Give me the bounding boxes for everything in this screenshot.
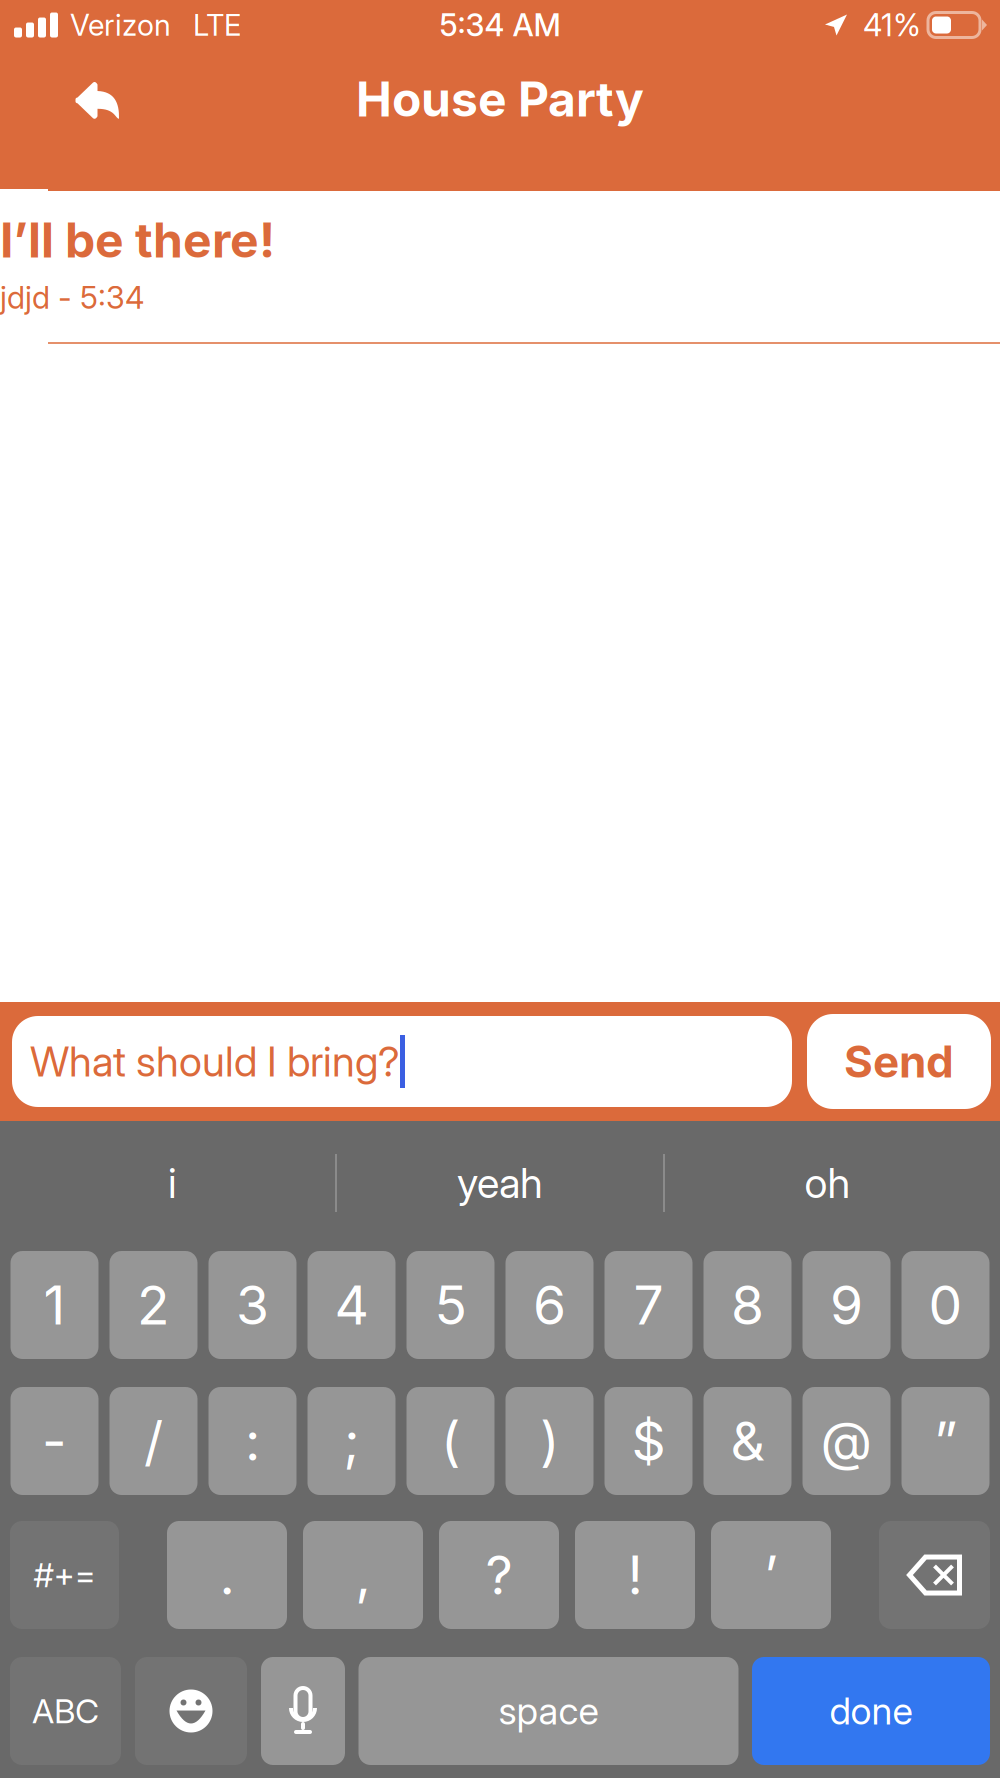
- button[interactable]: 8: [703, 1251, 791, 1359]
- staticText: 7: [633, 1273, 663, 1337]
- button[interactable]: .: [167, 1521, 287, 1629]
- button[interactable]: ”: [901, 1387, 989, 1495]
- staticText: ABC: [32, 1691, 99, 1731]
- button[interactable]: 3: [208, 1251, 296, 1359]
- staticText: oh: [804, 1158, 850, 1208]
- staticText: ’: [764, 1543, 778, 1607]
- button[interactable]: I’ll be there!: [0, 191, 1000, 344]
- staticText: ): [540, 1409, 559, 1473]
- button[interactable]: ;: [307, 1387, 395, 1495]
- staticText: -: [42, 1409, 67, 1473]
- button[interactable]: 9: [802, 1251, 890, 1359]
- staticText: 9: [830, 1273, 863, 1337]
- staticText: 1: [43, 1273, 65, 1337]
- staticText: &: [730, 1409, 764, 1473]
- staticText: 4: [334, 1273, 368, 1337]
- staticText: :: [245, 1409, 260, 1473]
- staticText: (: [441, 1409, 460, 1473]
- button[interactable]: ,: [303, 1521, 423, 1629]
- button[interactable]: Back: [0, 70, 160, 169]
- button[interactable]: yeah: [337, 1121, 663, 1245]
- button[interactable]: /: [109, 1387, 197, 1495]
- button[interactable]: @: [802, 1387, 890, 1495]
- staticText: 0: [928, 1273, 962, 1337]
- button[interactable]: 2: [109, 1251, 197, 1359]
- button[interactable]: #+=: [10, 1521, 119, 1629]
- button[interactable]: !: [575, 1521, 695, 1629]
- staticText: 41%: [863, 6, 921, 43]
- staticText: ?: [485, 1543, 512, 1607]
- button[interactable]: Dictation: [261, 1657, 345, 1765]
- staticText: ,: [355, 1543, 370, 1607]
- staticText: $: [631, 1409, 665, 1473]
- button[interactable]: ?: [439, 1521, 559, 1629]
- button[interactable]: Delete: [879, 1521, 990, 1629]
- button[interactable]: What should I bring?: [12, 1016, 792, 1107]
- staticText: i: [168, 1158, 177, 1208]
- staticText: ;: [343, 1409, 359, 1473]
- staticText: space: [498, 1688, 598, 1734]
- staticText: LTE: [193, 7, 241, 43]
- button[interactable]: -: [10, 1387, 98, 1495]
- staticText: .: [219, 1543, 234, 1607]
- staticText: @: [820, 1409, 872, 1473]
- button[interactable]: i: [10, 1121, 335, 1245]
- staticText: Send: [844, 1035, 954, 1088]
- staticText: 5:34 AM: [439, 6, 560, 43]
- staticText: I’ll be there!: [0, 211, 275, 269]
- button[interactable]: Send: [807, 1014, 991, 1109]
- button[interactable]: done: [752, 1657, 990, 1765]
- button[interactable]: oh: [665, 1121, 990, 1245]
- staticText: /: [144, 1409, 163, 1473]
- button[interactable]: ’: [711, 1521, 831, 1629]
- button[interactable]: 1: [10, 1251, 98, 1359]
- staticText: 2: [137, 1273, 170, 1337]
- button[interactable]: &: [703, 1387, 791, 1495]
- staticText: Verizon: [70, 7, 171, 43]
- button[interactable]: 6: [505, 1251, 593, 1359]
- button[interactable]: 7: [604, 1251, 692, 1359]
- staticText: yeah: [457, 1158, 543, 1208]
- button[interactable]: 0: [901, 1251, 989, 1359]
- button[interactable]: Emoji: [135, 1657, 247, 1765]
- button[interactable]: ABC: [10, 1657, 121, 1765]
- button[interactable]: $: [604, 1387, 692, 1495]
- staticText: jdjd - 5:34: [0, 279, 144, 316]
- button[interactable]: ): [505, 1387, 593, 1495]
- button[interactable]: (: [406, 1387, 494, 1495]
- staticText: House Party: [356, 70, 644, 128]
- button[interactable]: 4: [307, 1251, 395, 1359]
- staticText: What should I bring?: [30, 1036, 400, 1086]
- button[interactable]: 5: [406, 1251, 494, 1359]
- staticText: 8: [731, 1273, 764, 1337]
- staticText: 3: [236, 1273, 269, 1337]
- staticText: #+=: [33, 1555, 95, 1595]
- button[interactable]: space: [358, 1657, 738, 1765]
- staticText: done: [829, 1688, 912, 1734]
- staticText: 6: [533, 1273, 566, 1337]
- staticText: ”: [934, 1409, 957, 1473]
- staticText: !: [627, 1543, 642, 1607]
- staticText: 5: [434, 1273, 466, 1337]
- button[interactable]: :: [208, 1387, 296, 1495]
